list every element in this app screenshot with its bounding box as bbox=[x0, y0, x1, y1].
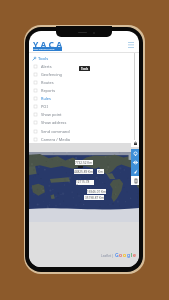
button[interactable]: Camera / Media bbox=[34, 136, 100, 143]
staticText: Tools bbox=[38, 56, 49, 62]
staticText: e bbox=[133, 252, 136, 259]
button[interactable]: Show address bbox=[34, 119, 100, 126]
button[interactable]: Send command bbox=[34, 128, 100, 135]
staticText: Tools bbox=[81, 67, 89, 71]
staticText: Rules bbox=[41, 96, 51, 101]
staticText: Send command bbox=[41, 129, 70, 134]
button[interactable]: Layers bbox=[131, 176, 139, 185]
button[interactable]: Rules bbox=[34, 95, 100, 102]
staticText: POI bbox=[41, 104, 48, 109]
staticText: g bbox=[127, 252, 131, 259]
button[interactable]: Alerts bbox=[34, 63, 100, 70]
staticText: Show point bbox=[41, 112, 62, 117]
staticText: Reports bbox=[41, 88, 56, 93]
staticText: l bbox=[131, 252, 133, 259]
button[interactable]: Show point bbox=[34, 111, 100, 118]
button[interactable]: Geofencing bbox=[34, 71, 100, 78]
button[interactable]: Reports bbox=[34, 87, 100, 94]
staticText: Y A C A bbox=[33, 39, 63, 51]
staticText: G bbox=[115, 252, 119, 259]
staticText: 7732.52 Km bbox=[75, 161, 93, 165]
staticText: Your Friend in your pocket bbox=[33, 47, 62, 51]
staticText: o bbox=[123, 252, 127, 259]
staticText: Leaflet | bbox=[101, 254, 115, 258]
staticText: Km bbox=[98, 170, 103, 174]
button[interactable]: Routes bbox=[34, 79, 100, 86]
staticText: o bbox=[119, 252, 123, 259]
button[interactable]: Open menu bbox=[126, 40, 135, 49]
button[interactable]: Lock map bbox=[131, 140, 139, 147]
button[interactable]: Map tool 2 bbox=[131, 158, 139, 167]
button[interactable]: Map tool 3 bbox=[131, 167, 139, 176]
staticText: Geofencing bbox=[41, 72, 62, 77]
staticText: Camera / Media bbox=[41, 137, 70, 142]
staticText: Alerts bbox=[41, 64, 52, 69]
staticText: 12115.78 Km bbox=[76, 180, 94, 185]
staticText: 35198.87 Km bbox=[85, 196, 104, 200]
button[interactable]: POI bbox=[34, 103, 100, 110]
button[interactable]: Tools bbox=[32, 56, 52, 62]
staticText: 44825.89 Km bbox=[74, 170, 93, 174]
staticText: Routes bbox=[41, 80, 54, 85]
button[interactable]: Y A C A bbox=[33, 39, 63, 51]
button[interactable]: Map tool 1 bbox=[131, 149, 139, 158]
staticText: Show address bbox=[41, 120, 67, 125]
staticText: 16946.01 Km bbox=[87, 190, 106, 194]
